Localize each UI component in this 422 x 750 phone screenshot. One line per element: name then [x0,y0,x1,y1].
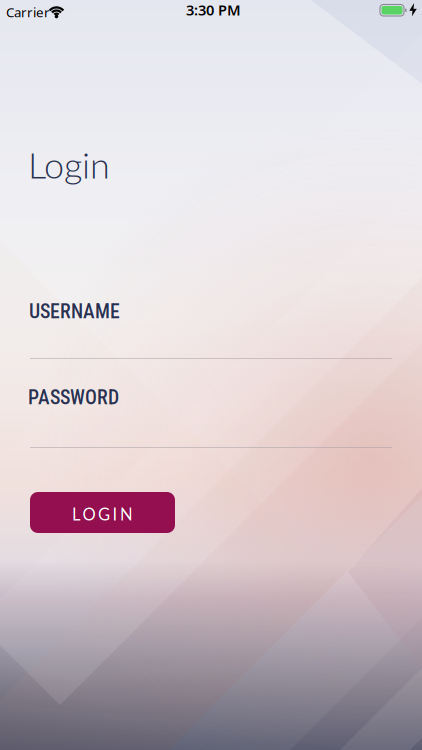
staticText: 3:30 PM [186,0,241,19]
staticText: Carrier [6,3,50,21]
staticText: LOGIN [72,504,133,524]
staticText: Login [28,143,110,186]
staticText: USERNAME [29,300,120,323]
button[interactable]: LOGIN [30,492,175,533]
staticText: PASSWORD [28,386,119,409]
